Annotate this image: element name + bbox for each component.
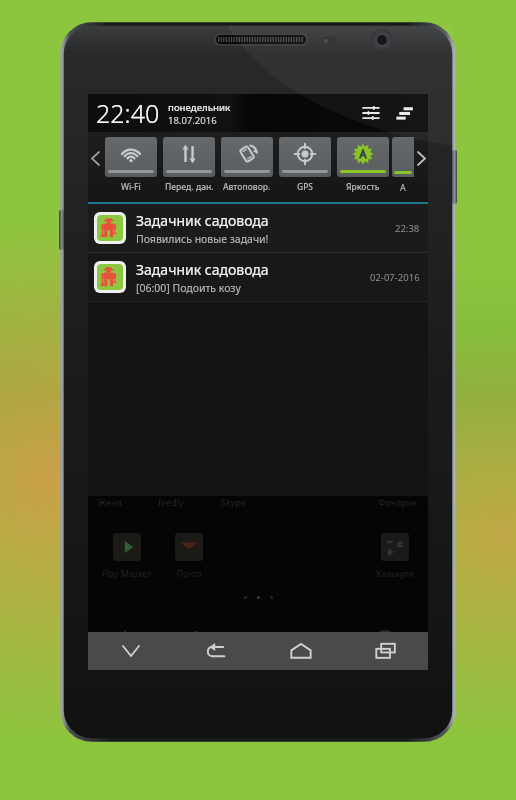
button[interactable]: Автоповор. <box>221 137 273 197</box>
staticText: Wi-Fi <box>121 181 141 193</box>
staticText: Женя <box>98 496 122 508</box>
button[interactable]: Settings <box>356 98 386 128</box>
staticText: Почта <box>177 568 202 580</box>
button[interactable]: Back <box>173 632 258 670</box>
staticText: Skype <box>221 496 246 508</box>
button[interactable]: Яркость <box>337 137 389 197</box>
staticText: GPS <box>297 181 314 193</box>
staticText: feedly <box>158 496 184 508</box>
staticText: 18.07.2016 <box>168 114 217 127</box>
staticText: Перед. дан. <box>165 181 214 193</box>
staticText: 22:38 <box>395 222 420 235</box>
staticText: [06:00] Подоить козу <box>136 281 241 295</box>
staticText: 22:40 <box>96 96 160 130</box>
button[interactable]: Recent apps <box>343 632 428 670</box>
staticText: Фонарик <box>378 496 418 508</box>
button[interactable]: Close notification shade <box>88 632 173 670</box>
button[interactable]: GPS <box>279 137 331 197</box>
staticText: Задачник садовода <box>136 260 269 279</box>
staticText: Задачник садовода <box>136 211 269 230</box>
staticText: А <box>400 181 406 193</box>
button[interactable]: Clear all notifications <box>390 98 420 128</box>
button[interactable]: Задачник садовода <box>88 204 428 252</box>
button[interactable]: More toggles <box>414 132 428 202</box>
staticText: Калькуля <box>376 568 414 580</box>
button[interactable]: Home <box>258 632 343 670</box>
staticText: понедельник <box>168 101 231 114</box>
staticText: 02-07-2016 <box>370 271 420 284</box>
staticText: Play Маркет <box>102 568 152 580</box>
button[interactable]: Перед. дан. <box>163 137 215 197</box>
staticText: Автоповор. <box>223 181 271 193</box>
staticText: Появились новые задачи! <box>136 232 269 246</box>
staticText: Яркость <box>346 181 380 193</box>
button[interactable]: Задачник садовода <box>88 253 428 301</box>
button[interactable]: Wi-Fi <box>105 137 157 197</box>
button[interactable]: Previous toggles <box>88 132 102 202</box>
